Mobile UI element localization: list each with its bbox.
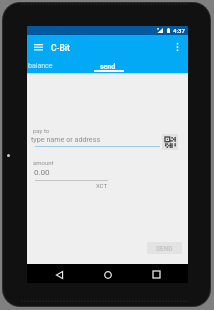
staticText: 0.00 [34, 168, 50, 177]
button[interactable]: Recent apps [147, 265, 166, 284]
staticText: C-Bit [51, 43, 70, 53]
staticText: type name or address [31, 135, 101, 143]
button[interactable]: SEND [147, 242, 182, 254]
staticText: pay to [33, 127, 50, 134]
button[interactable]: Scan QR code [162, 134, 178, 150]
staticText: 4:37 [173, 27, 185, 34]
button[interactable]: Back [50, 265, 69, 284]
button[interactable]: send [100, 63, 116, 71]
staticText: SEND [156, 245, 173, 253]
button[interactable]: More options [169, 38, 185, 54]
button[interactable]: Home [98, 265, 117, 284]
staticText: amount [33, 159, 54, 166]
button[interactable]: balance [28, 62, 53, 70]
staticText: XCT [34, 182, 107, 189]
button[interactable]: Open navigation drawer [30, 38, 46, 54]
